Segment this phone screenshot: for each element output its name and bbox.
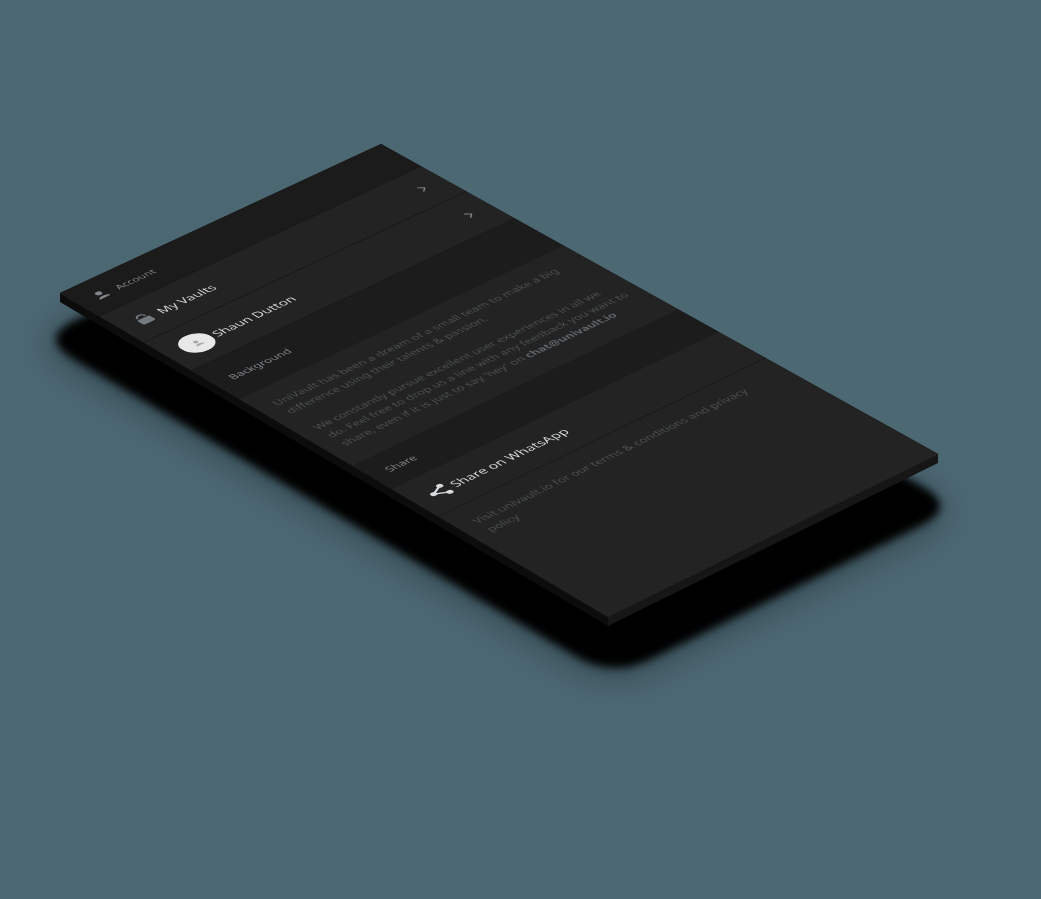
button[interactable]: Shaun Dutton xyxy=(0,116,360,180)
button[interactable]: Share on WhatsApp xyxy=(0,446,360,505)
staticText: We constantly pursue excellent user expe… xyxy=(16,317,346,369)
staticText: UniVault has been a dream of a small tea… xyxy=(16,263,346,297)
